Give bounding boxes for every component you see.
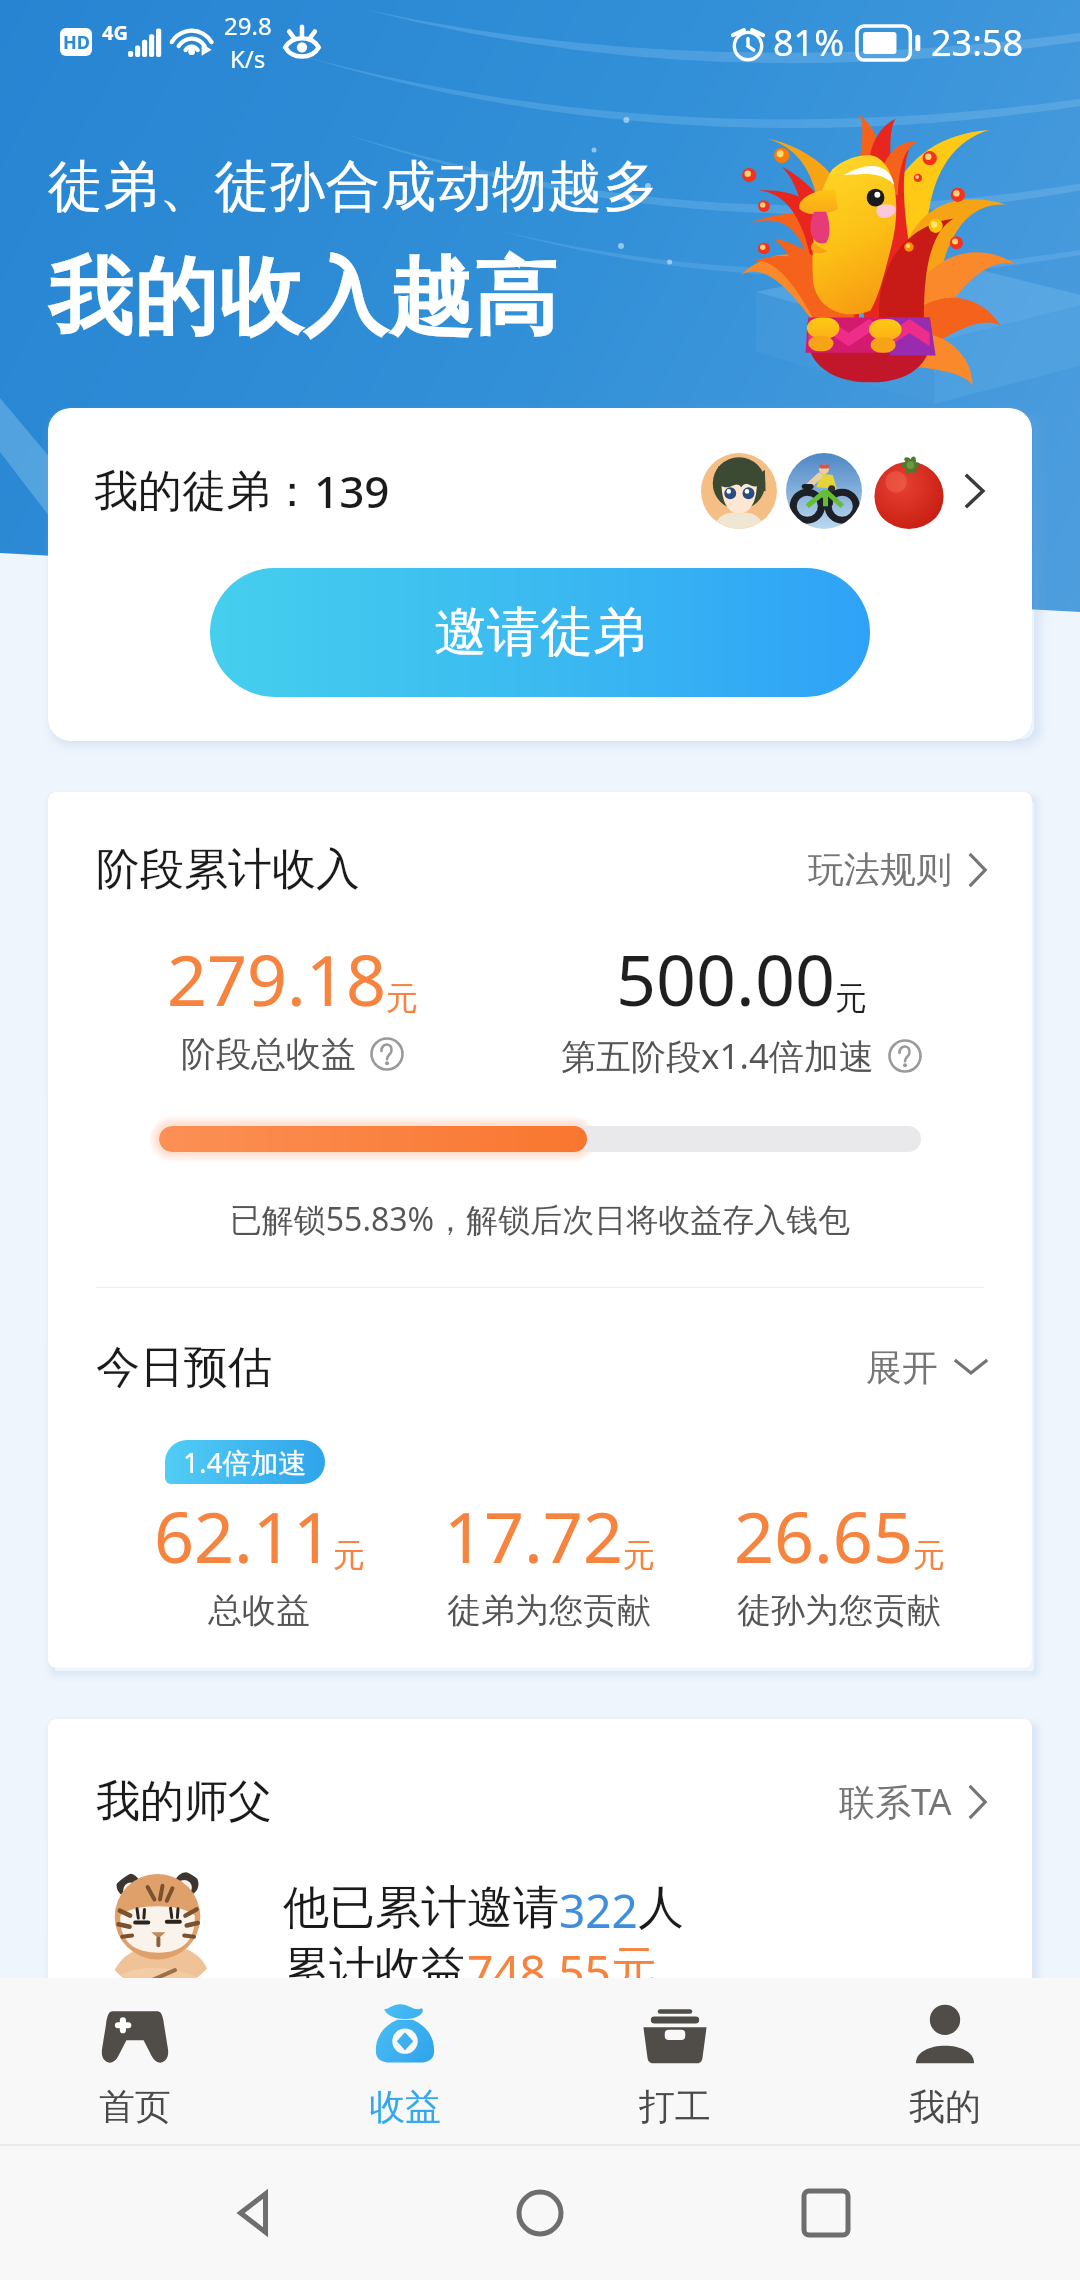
button[interactable]: Home xyxy=(496,2169,584,2257)
staticText: 322 xyxy=(559,1879,638,1942)
staticText: 500.00 xyxy=(616,931,835,1026)
staticText: 我的 xyxy=(909,2084,981,2129)
staticText: 元 xyxy=(835,978,867,1018)
staticText: K/s xyxy=(230,42,266,75)
staticText: 748.55 xyxy=(467,1940,611,2003)
staticText: 阶段总收益 xyxy=(181,1032,356,1076)
staticText: 1.4倍加速 xyxy=(183,1443,307,1481)
staticText: 累计收益 xyxy=(283,1940,467,1998)
staticText: 人 xyxy=(638,1879,684,1937)
staticText: 元 xyxy=(333,1535,365,1575)
staticText: 展开 xyxy=(866,1345,938,1390)
staticText: 23:58 xyxy=(931,18,1024,67)
staticText: 元 xyxy=(623,1535,655,1575)
staticText: 总收益 xyxy=(208,1589,310,1632)
button[interactable]: 首页 xyxy=(0,1978,270,2144)
staticText: 打工 xyxy=(639,2084,711,2129)
button[interactable]: Back xyxy=(210,2169,298,2257)
staticText: 26.65 xyxy=(734,1488,913,1583)
button[interactable]: 我的师父 联系TA xyxy=(48,1719,1032,1884)
staticText: HD xyxy=(63,30,90,55)
button[interactable]: Recents xyxy=(782,2169,870,2257)
staticText: 收益 xyxy=(369,2084,441,2129)
staticText: 81% xyxy=(773,18,845,67)
staticText: 我的收入越高 xyxy=(48,245,558,351)
staticText: 今日预估 xyxy=(96,1340,272,1395)
staticText: 139 xyxy=(314,461,390,521)
staticText: 29.8 xyxy=(224,9,272,42)
button[interactable]: 邀请徒弟 xyxy=(210,568,870,697)
staticText: 他已累计邀请 xyxy=(283,1879,559,1937)
staticText: 17.72 xyxy=(444,1488,623,1583)
button[interactable]: 今日预估 展开 xyxy=(48,1323,1032,1411)
button[interactable]: 我的 xyxy=(810,1978,1080,2144)
staticText: 4G xyxy=(102,19,128,46)
staticText: 元 xyxy=(611,1940,657,1998)
staticText: 阶段累计收入 xyxy=(96,842,360,897)
staticText: 联系TA xyxy=(839,1777,952,1826)
staticText: 元 xyxy=(913,1535,945,1575)
staticText: 已解锁55.83%，解锁后次日将收益存入钱包 xyxy=(48,1197,1032,1241)
button[interactable]: 阶段累计收入 玩法规则 xyxy=(48,792,1032,947)
staticText: 我的师父 xyxy=(96,1774,272,1829)
button[interactable]: 收益 xyxy=(270,1978,540,2144)
staticText: 首页 xyxy=(99,2084,171,2129)
staticText: 徒弟为您贡献 xyxy=(447,1589,651,1632)
staticText: 玩法规则 xyxy=(808,847,952,892)
staticText: 邀请徒弟 xyxy=(434,599,646,666)
staticText: 元 xyxy=(386,978,418,1018)
staticText: 徒弟、徒孙合成动物越多 xyxy=(48,152,659,221)
button[interactable]: 我的徒弟 139 xyxy=(48,408,1032,574)
button[interactable]: 打工 xyxy=(540,1978,810,2144)
staticText: 我的徒弟： xyxy=(94,464,314,519)
staticText: 徒孙为您贡献 xyxy=(737,1589,941,1632)
staticText: 62.11 xyxy=(154,1488,333,1583)
staticText: 279.18 xyxy=(167,931,386,1026)
staticText: 第五阶段x1.4倍加速 xyxy=(561,1032,874,1080)
